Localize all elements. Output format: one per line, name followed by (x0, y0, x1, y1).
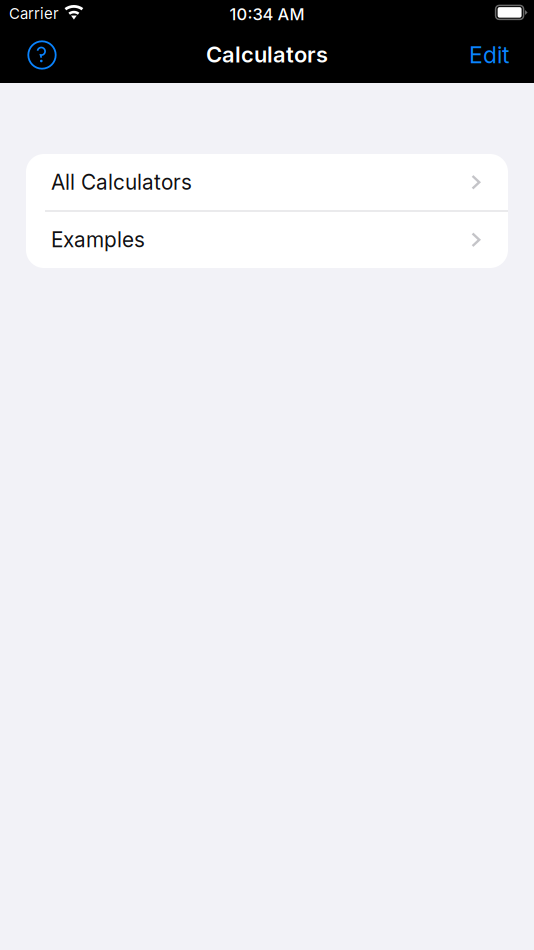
staticText: Edit (469, 41, 509, 69)
staticText: Carrier (9, 4, 59, 23)
staticText: Calculators (206, 41, 328, 68)
button[interactable]: Edit (460, 33, 518, 77)
button[interactable]: Help (20, 33, 64, 77)
staticText: 10:34 AM (229, 4, 304, 24)
button[interactable]: All Calculators (26, 154, 508, 210)
staticText: All Calculators (51, 170, 192, 195)
button[interactable]: Examples (26, 211, 508, 268)
staticText: Examples (51, 227, 145, 252)
